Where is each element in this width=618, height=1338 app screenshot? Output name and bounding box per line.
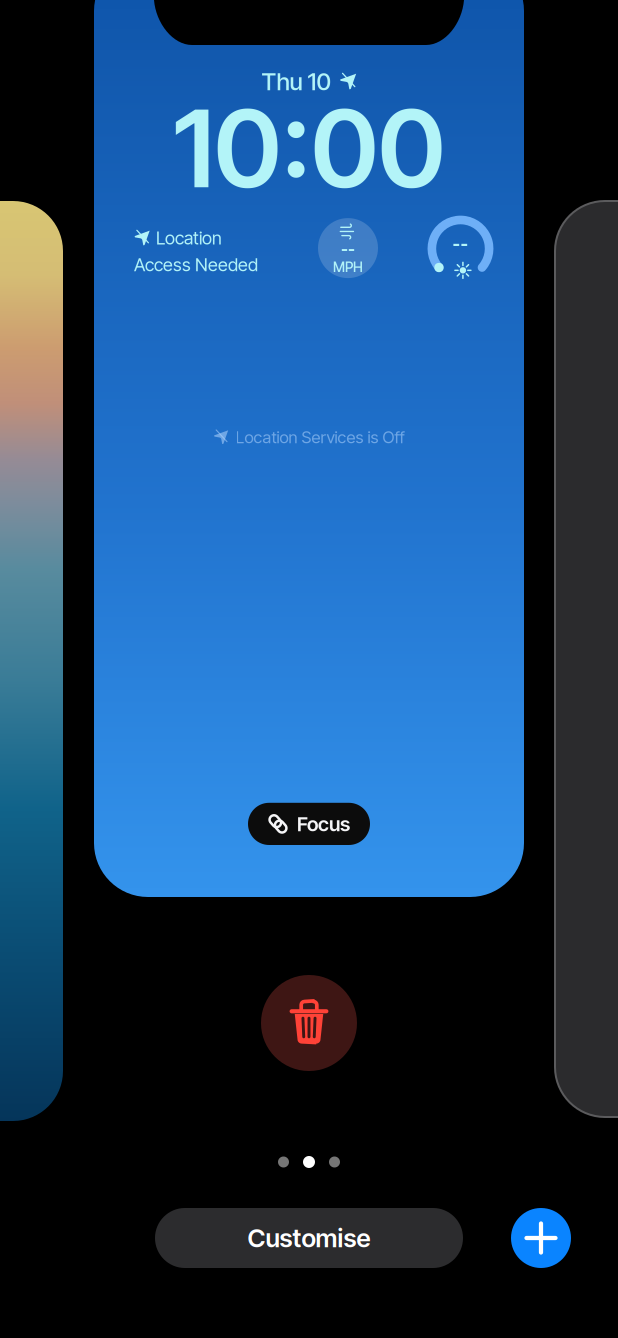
staticText: Focus <box>297 812 350 836</box>
staticText: Thu 10 <box>261 67 330 96</box>
staticText: Location <box>156 227 222 249</box>
staticText: MPH <box>333 259 363 276</box>
staticText: -- <box>452 233 468 254</box>
staticText: 10:00 <box>173 84 445 213</box>
staticText: Location Services is Off <box>235 427 404 447</box>
button[interactable]: Customise <box>155 1208 463 1268</box>
button[interactable]: Delete wallpaper <box>261 975 357 1071</box>
staticText: Customise <box>247 1223 370 1253</box>
staticText: -- <box>341 239 355 259</box>
button[interactable]: Add wallpaper <box>511 1208 571 1268</box>
staticText: Access Needed <box>134 254 258 276</box>
